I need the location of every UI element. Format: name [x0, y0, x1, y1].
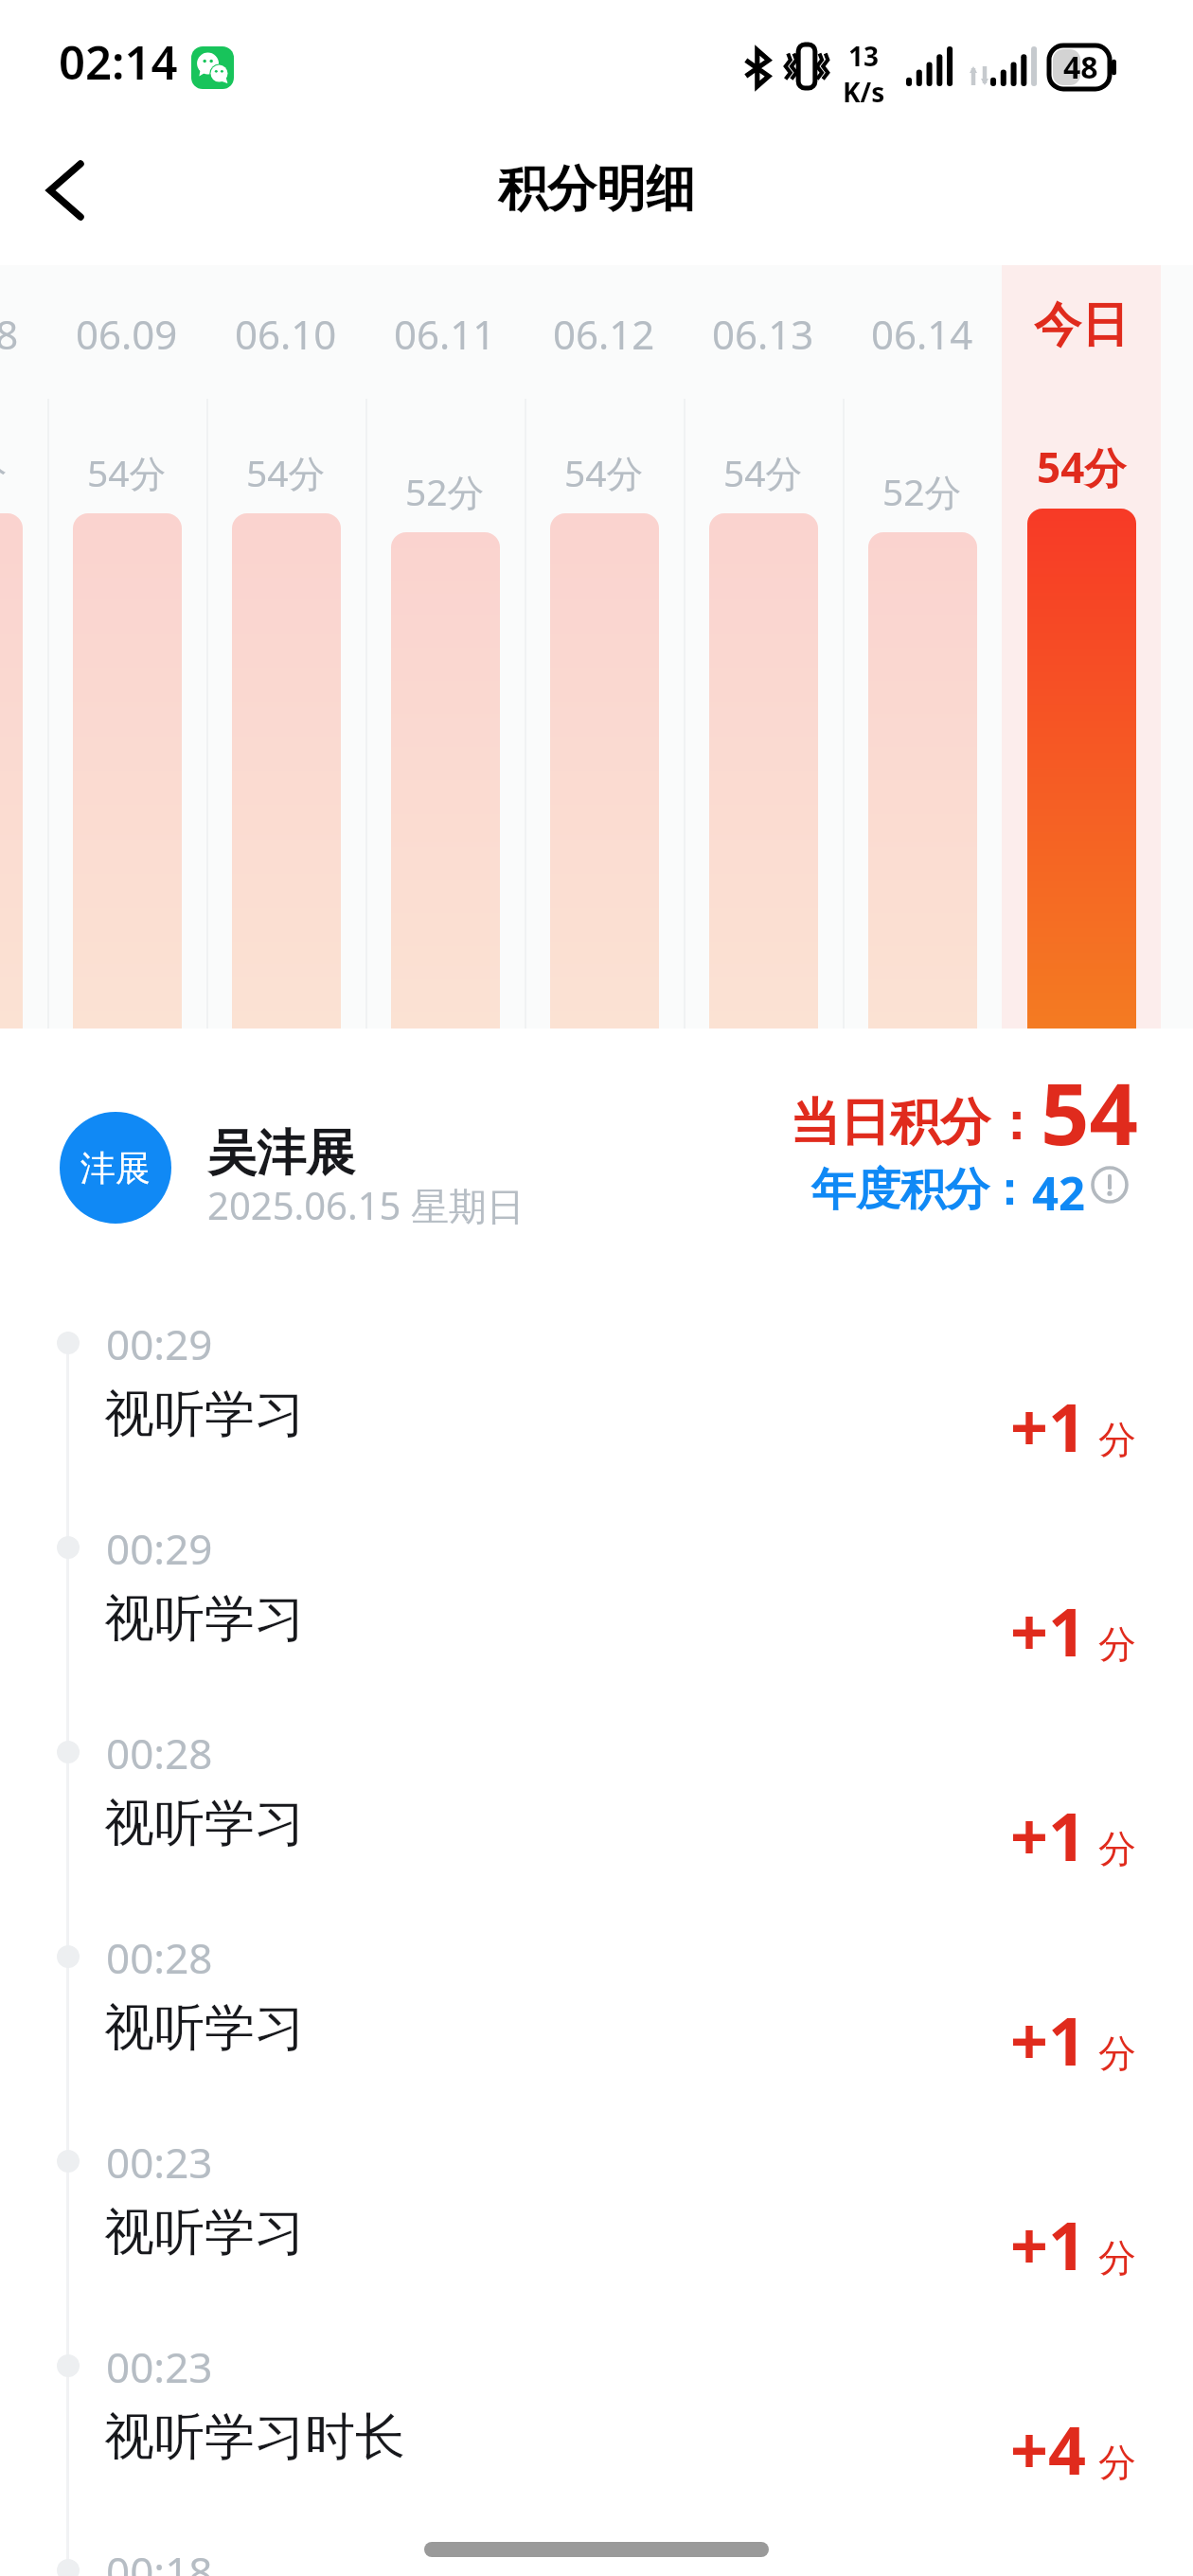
staticText: 00:28 [106, 1929, 213, 1986]
button[interactable]: 今日 [1002, 265, 1161, 1029]
staticText: +1 [1010, 1995, 1087, 2084]
staticText: +1 [1010, 1790, 1087, 1880]
staticText: 积分明细 [498, 158, 695, 221]
button[interactable]: 00:29 [0, 1517, 1193, 1722]
button[interactable]: 06.12 [525, 265, 684, 1029]
staticText: 00:29 [106, 1520, 213, 1577]
staticText: 06.11 [394, 307, 496, 361]
staticText: 00:23 [106, 2338, 213, 2395]
staticText: 00:18 [106, 2543, 213, 2576]
staticText: +4 [1010, 2404, 1087, 2494]
staticText: 54分 [1037, 438, 1127, 495]
button[interactable]: 00:28 [0, 1722, 1193, 1926]
button[interactable]: 积分说明 [1090, 1165, 1130, 1205]
staticText: 02:14 [59, 30, 178, 94]
staticText: 视听学习 [104, 1996, 305, 2060]
staticText: 2025.06.15 星期日 [207, 1179, 525, 1231]
staticText: 今日 [1034, 295, 1129, 355]
staticText: 42 [1032, 1161, 1086, 1225]
button[interactable]: 返回 [13, 138, 117, 242]
staticText: +1 [1010, 1585, 1087, 1675]
button[interactable]: 06.14 [843, 265, 1002, 1029]
button[interactable]: 06.13 [684, 265, 843, 1029]
staticText: 54分 [0, 447, 8, 497]
staticText: 分 [1098, 2030, 1136, 2077]
staticText: 视听学习 [104, 1792, 305, 1855]
staticText: K/s [843, 74, 885, 110]
staticText: 年度积分 [811, 1162, 989, 1218]
staticText: 06.10 [235, 307, 337, 361]
staticText: 吴沣展 [207, 1122, 355, 1185]
staticText: 54分 [87, 447, 167, 497]
staticText: 13 [848, 38, 880, 74]
staticText: 视听学习 [104, 2201, 305, 2264]
staticText: 视听学习时长 [104, 2406, 405, 2469]
button[interactable]: 06.11 [365, 265, 525, 1029]
staticText: 沣展 [80, 1146, 151, 1190]
staticText: 06.12 [553, 307, 655, 361]
staticText: 分 [1098, 2439, 1136, 2486]
staticText: 48 [1063, 46, 1098, 88]
staticText: 当日积分： [790, 1091, 1041, 1154]
staticText: 分 [1098, 2234, 1136, 2281]
staticText: 54 [1041, 1054, 1138, 1171]
button[interactable]: 00:28 [0, 1926, 1193, 2131]
staticText: 52分 [405, 466, 485, 516]
staticText: +1 [1010, 2199, 1087, 2289]
button[interactable]: 00:23 [0, 2131, 1193, 2335]
staticText: 06.14 [871, 307, 973, 361]
button[interactable]: 00:18 [0, 2540, 1193, 2576]
button[interactable]: 06.10 [206, 265, 365, 1029]
staticText: 06.13 [712, 307, 814, 361]
button[interactable]: 00:29 [0, 1313, 1193, 1517]
staticText: 52分 [882, 466, 962, 516]
staticText: 54分 [723, 447, 803, 497]
staticText: +1 [1010, 1381, 1087, 1471]
button[interactable]: 06.08 [0, 265, 47, 1029]
staticText: 分 [1098, 1825, 1136, 1872]
staticText: 视听学习 [104, 1587, 305, 1651]
button[interactable]: 06.09 [47, 265, 206, 1029]
staticText: 分 [1098, 1620, 1136, 1668]
staticText: 00:28 [106, 1725, 213, 1781]
staticText: ： [987, 1162, 1031, 1218]
staticText: 06.08 [0, 307, 19, 361]
button[interactable]: 00:23 [0, 2335, 1193, 2540]
staticText: 视听学习 [104, 1383, 305, 1446]
staticText: 00:29 [106, 1315, 213, 1372]
staticText: 54分 [564, 447, 644, 497]
staticText: 54分 [246, 447, 326, 497]
staticText: 00:23 [106, 2134, 213, 2191]
staticText: 分 [1098, 1416, 1136, 1463]
button[interactable]: 用户头像 沣展 [60, 1112, 171, 1224]
staticText: 06.09 [76, 307, 178, 361]
